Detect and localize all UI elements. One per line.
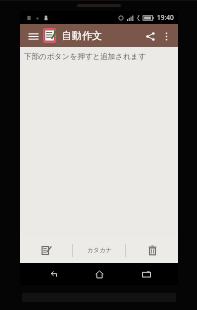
staticText: 自動作文 [62, 29, 141, 42]
button[interactable]: Menu [25, 28, 41, 44]
button[interactable]: カタカナ [73, 237, 125, 263]
button[interactable]: More options [159, 29, 173, 43]
button[interactable]: Back [37, 263, 67, 285]
staticText: 下部のボタンを押すと追加されます [24, 52, 146, 61]
staticText: カタカナ [87, 246, 112, 254]
button[interactable]: App icon [43, 28, 57, 43]
button[interactable]: Home [84, 263, 114, 285]
button[interactable]: Share [141, 27, 159, 45]
button[interactable]: Delete [126, 237, 178, 263]
button[interactable]: New entry [20, 237, 72, 263]
staticText: 19:40 [157, 13, 174, 22]
button[interactable]: Recent apps [131, 263, 161, 285]
